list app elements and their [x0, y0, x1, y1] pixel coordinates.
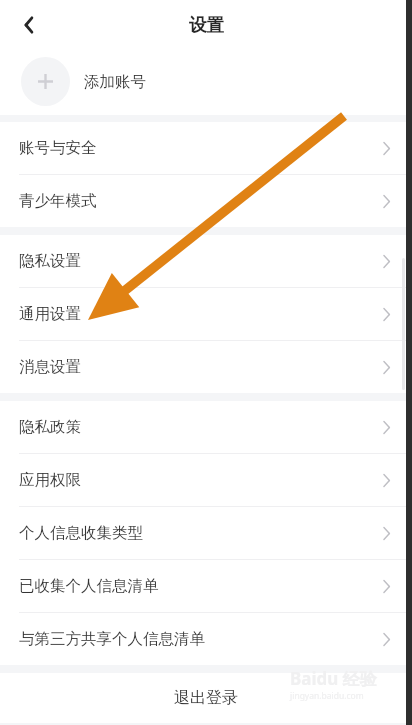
staticText: 退出登录 — [174, 688, 238, 708]
button[interactable]: 青少年模式 — [0, 175, 412, 227]
staticText: 通用设置 — [19, 304, 81, 324]
staticText: 隐私设置 — [19, 251, 81, 271]
button[interactable]: 个人信息收集类型 — [0, 507, 412, 559]
button[interactable]: 通用设置 — [0, 288, 412, 340]
staticText: 个人信息收集类型 — [19, 523, 143, 543]
button[interactable]: 退出登录 — [0, 673, 412, 723]
staticText: jingyan.baidu.com — [290, 690, 364, 702]
button[interactable]: 隐私设置 — [0, 235, 412, 287]
staticText: 设置 — [189, 14, 224, 36]
staticText: 添加账号 — [84, 72, 146, 92]
staticText: 账号与安全 — [19, 138, 97, 158]
button[interactable]: 添加账号 — [0, 50, 412, 115]
button[interactable]: 隐私政策 — [0, 401, 412, 453]
staticText: 青少年模式 — [19, 191, 97, 211]
staticText: 已收集个人信息清单 — [19, 576, 159, 596]
button[interactable]: 账号与安全 — [0, 122, 412, 174]
button[interactable]: Back — [12, 7, 48, 43]
staticText: 隐私政策 — [19, 417, 81, 437]
staticText: 应用权限 — [19, 470, 81, 490]
button[interactable]: 应用权限 — [0, 454, 412, 506]
staticText: Baidu 经验 — [290, 667, 377, 690]
staticText: 消息设置 — [19, 357, 81, 377]
button[interactable]: 已收集个人信息清单 — [0, 560, 412, 612]
button[interactable]: 与第三方共享个人信息清单 — [0, 613, 412, 665]
staticText: 与第三方共享个人信息清单 — [19, 629, 205, 649]
button[interactable]: 消息设置 — [0, 341, 412, 393]
